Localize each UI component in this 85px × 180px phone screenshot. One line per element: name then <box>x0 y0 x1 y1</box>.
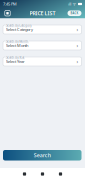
staticText: ıll <box>68 1 71 7</box>
staticText: › <box>76 58 78 65</box>
staticText: ᯤ <box>73 1 77 7</box>
staticText: Select Month <box>6 43 28 48</box>
staticText: › <box>76 42 78 49</box>
button[interactable]: Menu <box>3 9 12 18</box>
staticText: PRICE LIST <box>29 10 55 17</box>
staticText: Select Category <box>6 27 33 32</box>
button[interactable]: Select Category <box>3 25 81 34</box>
staticText: Select Year <box>6 59 25 64</box>
staticText: BACK <box>70 11 78 15</box>
staticText: Search By Category <box>6 24 31 27</box>
staticText: Search By Month <box>6 40 28 43</box>
staticText: Search By Year <box>6 56 24 59</box>
button[interactable]: Search <box>3 150 81 160</box>
staticText: 7:45 PM <box>3 1 17 7</box>
button[interactable]: Search <box>33 168 51 180</box>
staticText: Search <box>34 152 51 159</box>
button[interactable]: Select Year <box>3 57 81 66</box>
button[interactable]: Select Month <box>3 41 81 50</box>
button[interactable]: Home <box>15 168 33 180</box>
button[interactable]: BACK <box>67 10 81 16</box>
staticText: › <box>76 26 78 33</box>
button[interactable]: Profile <box>51 168 69 180</box>
